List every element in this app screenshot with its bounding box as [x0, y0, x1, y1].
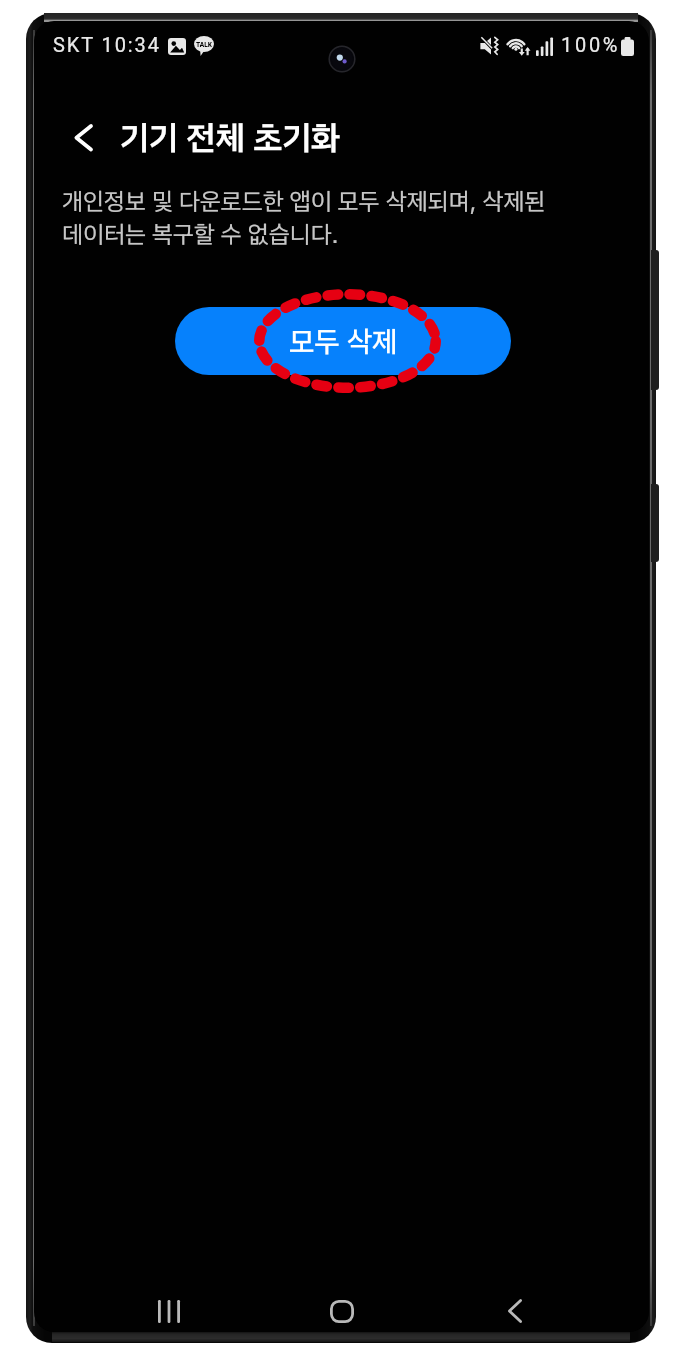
staticText: 개인정보 및 다운로드한 앱이 모두 삭제되며, 삭제된 데이터는 복구할 수 … [62, 187, 622, 249]
button[interactable]: Home [295, 1283, 389, 1332]
button[interactable]: Back [468, 1283, 562, 1332]
staticText: TALK [196, 41, 213, 49]
button[interactable]: Recent apps [122, 1283, 216, 1332]
staticText: 100% [561, 33, 621, 56]
button[interactable]: 모두 삭제 [175, 307, 511, 375]
button[interactable]: Back [58, 112, 108, 162]
staticText: 모두 삭제 [289, 324, 398, 359]
staticText: 기기 전체 초기화 [120, 118, 341, 159]
staticText: SKT 10:34 [53, 33, 161, 56]
